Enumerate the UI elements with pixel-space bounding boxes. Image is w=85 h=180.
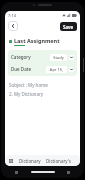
staticText: Subject : My home: [9, 82, 48, 88]
button[interactable]: Open Category picker: [69, 55, 74, 60]
staticText: Category: [11, 54, 31, 60]
staticText: 7:14: [8, 13, 16, 18]
button[interactable]: Dictionary's: [46, 158, 71, 164]
staticText: Apr 16, 2024: [48, 67, 65, 72]
button[interactable]: Save: [60, 22, 77, 31]
button[interactable]: Due Date: [11, 65, 74, 73]
staticText: 2. My Dictionary: [9, 91, 44, 97]
other: Home: [31, 171, 55, 173]
staticText: Study: [52, 55, 65, 60]
button[interactable]: Category: [11, 53, 74, 61]
button[interactable]: Dictionary: [19, 158, 41, 164]
staticText: Dictionary: [19, 158, 41, 164]
button[interactable]: Open Due Date picker: [69, 67, 74, 72]
button[interactable]: Back: [8, 21, 18, 31]
button[interactable]: Keyboard options: [8, 158, 14, 164]
staticText: Due Date: [11, 66, 32, 72]
staticText: Last Assignment: [14, 37, 60, 44]
staticText: Dictionary's: [46, 158, 71, 164]
staticText: Save: [63, 24, 74, 30]
